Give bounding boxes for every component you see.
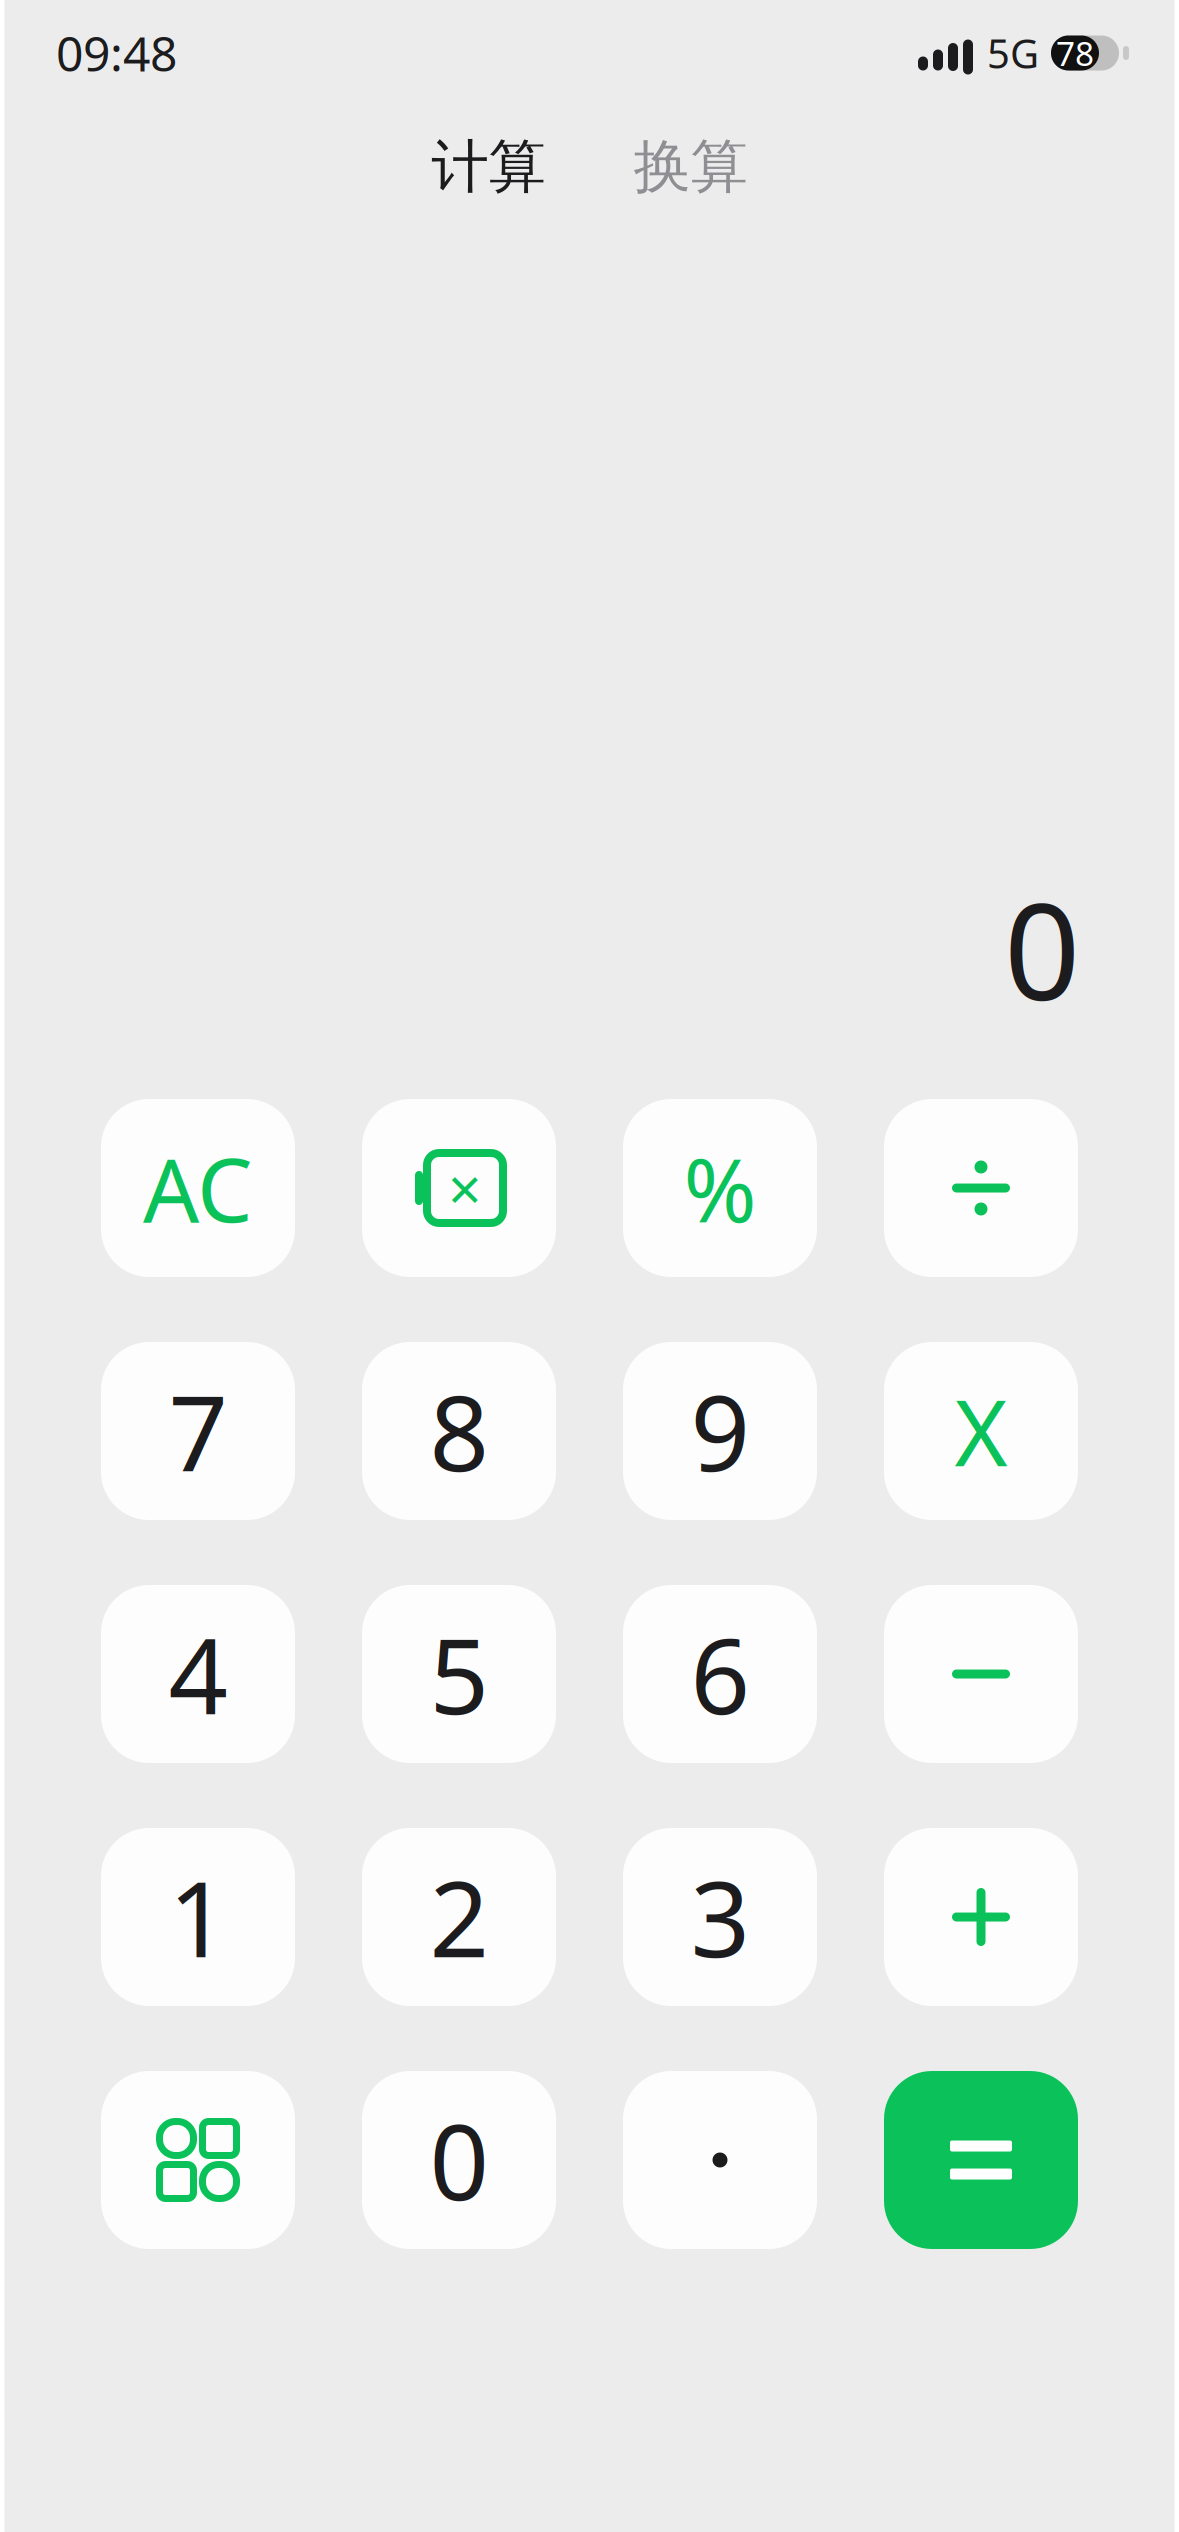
button[interactable]: 1 bbox=[101, 1828, 295, 2006]
button[interactable]: X bbox=[884, 1342, 1078, 1520]
staticText: 1 bbox=[168, 1848, 227, 1986]
staticText: 9 bbox=[690, 1362, 749, 1500]
button[interactable]: 2 bbox=[362, 1828, 556, 2006]
staticText: AC bbox=[143, 1130, 253, 1246]
button[interactable]: 4 bbox=[101, 1585, 295, 1763]
staticText: X bbox=[954, 1371, 1007, 1491]
staticText: 0 bbox=[429, 2091, 488, 2229]
staticText: 5G bbox=[987, 26, 1039, 79]
button[interactable]: AC bbox=[101, 1099, 295, 1277]
staticText: 78 bbox=[1056, 31, 1094, 75]
button[interactable]: Scan bbox=[101, 2071, 295, 2249]
staticText: 计算 bbox=[431, 132, 545, 202]
button[interactable]: 换算 bbox=[627, 132, 753, 202]
button[interactable]: 7 bbox=[101, 1342, 295, 1520]
staticText: 7 bbox=[168, 1362, 227, 1500]
staticText: 6 bbox=[690, 1605, 749, 1743]
button[interactable]: 计算 bbox=[425, 132, 551, 202]
staticText: 5 bbox=[429, 1605, 488, 1743]
button[interactable]: 0 bbox=[362, 2071, 556, 2249]
button[interactable]: 6 bbox=[623, 1585, 817, 1763]
staticText: % bbox=[683, 1130, 756, 1246]
button[interactable]: Delete bbox=[362, 1099, 556, 1277]
staticText: 09:48 bbox=[56, 21, 177, 85]
button[interactable]: Decimal point bbox=[623, 2071, 817, 2249]
button[interactable]: Minus bbox=[884, 1585, 1078, 1763]
staticText: 2 bbox=[429, 1848, 488, 1986]
staticText: × bbox=[448, 1149, 482, 1227]
button[interactable]: 5 bbox=[362, 1585, 556, 1763]
staticText: 换算 bbox=[633, 132, 747, 202]
button[interactable]: Plus bbox=[884, 1828, 1078, 2006]
button[interactable]: % bbox=[623, 1099, 817, 1277]
staticText: 0 bbox=[1004, 860, 1080, 1037]
button[interactable]: 3 bbox=[623, 1828, 817, 2006]
staticText: 8 bbox=[429, 1362, 488, 1500]
staticText: 3 bbox=[690, 1848, 749, 1986]
staticText: 4 bbox=[168, 1605, 227, 1743]
button[interactable]: Divide bbox=[884, 1099, 1078, 1277]
button[interactable]: 8 bbox=[362, 1342, 556, 1520]
button[interactable]: 9 bbox=[623, 1342, 817, 1520]
button[interactable]: Equals bbox=[884, 2071, 1078, 2249]
